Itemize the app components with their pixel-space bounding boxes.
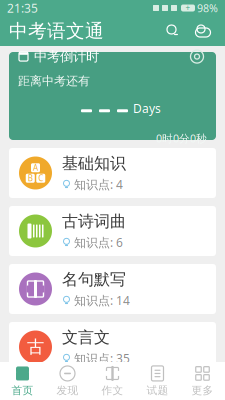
staticText: 基础知识	[62, 154, 126, 173]
button[interactable]: Settings	[187, 47, 207, 67]
staticText: 0时0分0秒	[156, 131, 207, 145]
staticText: Days	[133, 100, 161, 116]
staticText: A	[33, 162, 38, 173]
button[interactable]: 名句默写	[9, 264, 216, 314]
staticText: 试题	[146, 384, 168, 397]
button[interactable]: A	[9, 148, 216, 198]
staticText: 知识点: 14	[74, 292, 130, 308]
button[interactable]: 更多	[180, 363, 225, 399]
staticText: 作文	[101, 384, 123, 397]
staticText: 中考语文通	[9, 19, 104, 42]
button[interactable]: 发现	[45, 363, 90, 399]
staticText: 21:35	[7, 0, 38, 16]
button[interactable]: 现代文	[9, 380, 216, 400]
button[interactable]: 古	[9, 322, 216, 372]
staticText: +	[185, 3, 190, 13]
staticText: 现代文	[62, 386, 110, 400]
button[interactable]: Search	[160, 18, 186, 44]
staticText: 距离中考还有	[18, 74, 90, 88]
staticText: 文言文	[62, 328, 110, 347]
staticText: 中考倒计时	[34, 48, 99, 65]
staticText: 98%	[197, 1, 218, 15]
staticText: 知识点: 4	[74, 176, 123, 192]
staticText: 知识点: 35	[74, 350, 130, 366]
staticText: 古诗词曲	[62, 212, 126, 231]
staticText: 发现	[56, 384, 78, 397]
staticText: 古	[27, 336, 44, 358]
button[interactable]: 首页	[0, 363, 45, 399]
staticText: C	[38, 173, 43, 183]
staticText: 首页	[11, 384, 33, 397]
button[interactable]: 试题	[135, 363, 180, 399]
button[interactable]: 古诗词曲	[9, 206, 216, 256]
staticText: 名句默写	[62, 270, 126, 289]
button[interactable]: 作文	[90, 363, 135, 399]
staticText: 更多	[191, 384, 213, 397]
staticText: 知识点: 6	[74, 234, 123, 250]
staticText: B	[28, 173, 33, 183]
button[interactable]: Cloud sync	[190, 18, 216, 44]
